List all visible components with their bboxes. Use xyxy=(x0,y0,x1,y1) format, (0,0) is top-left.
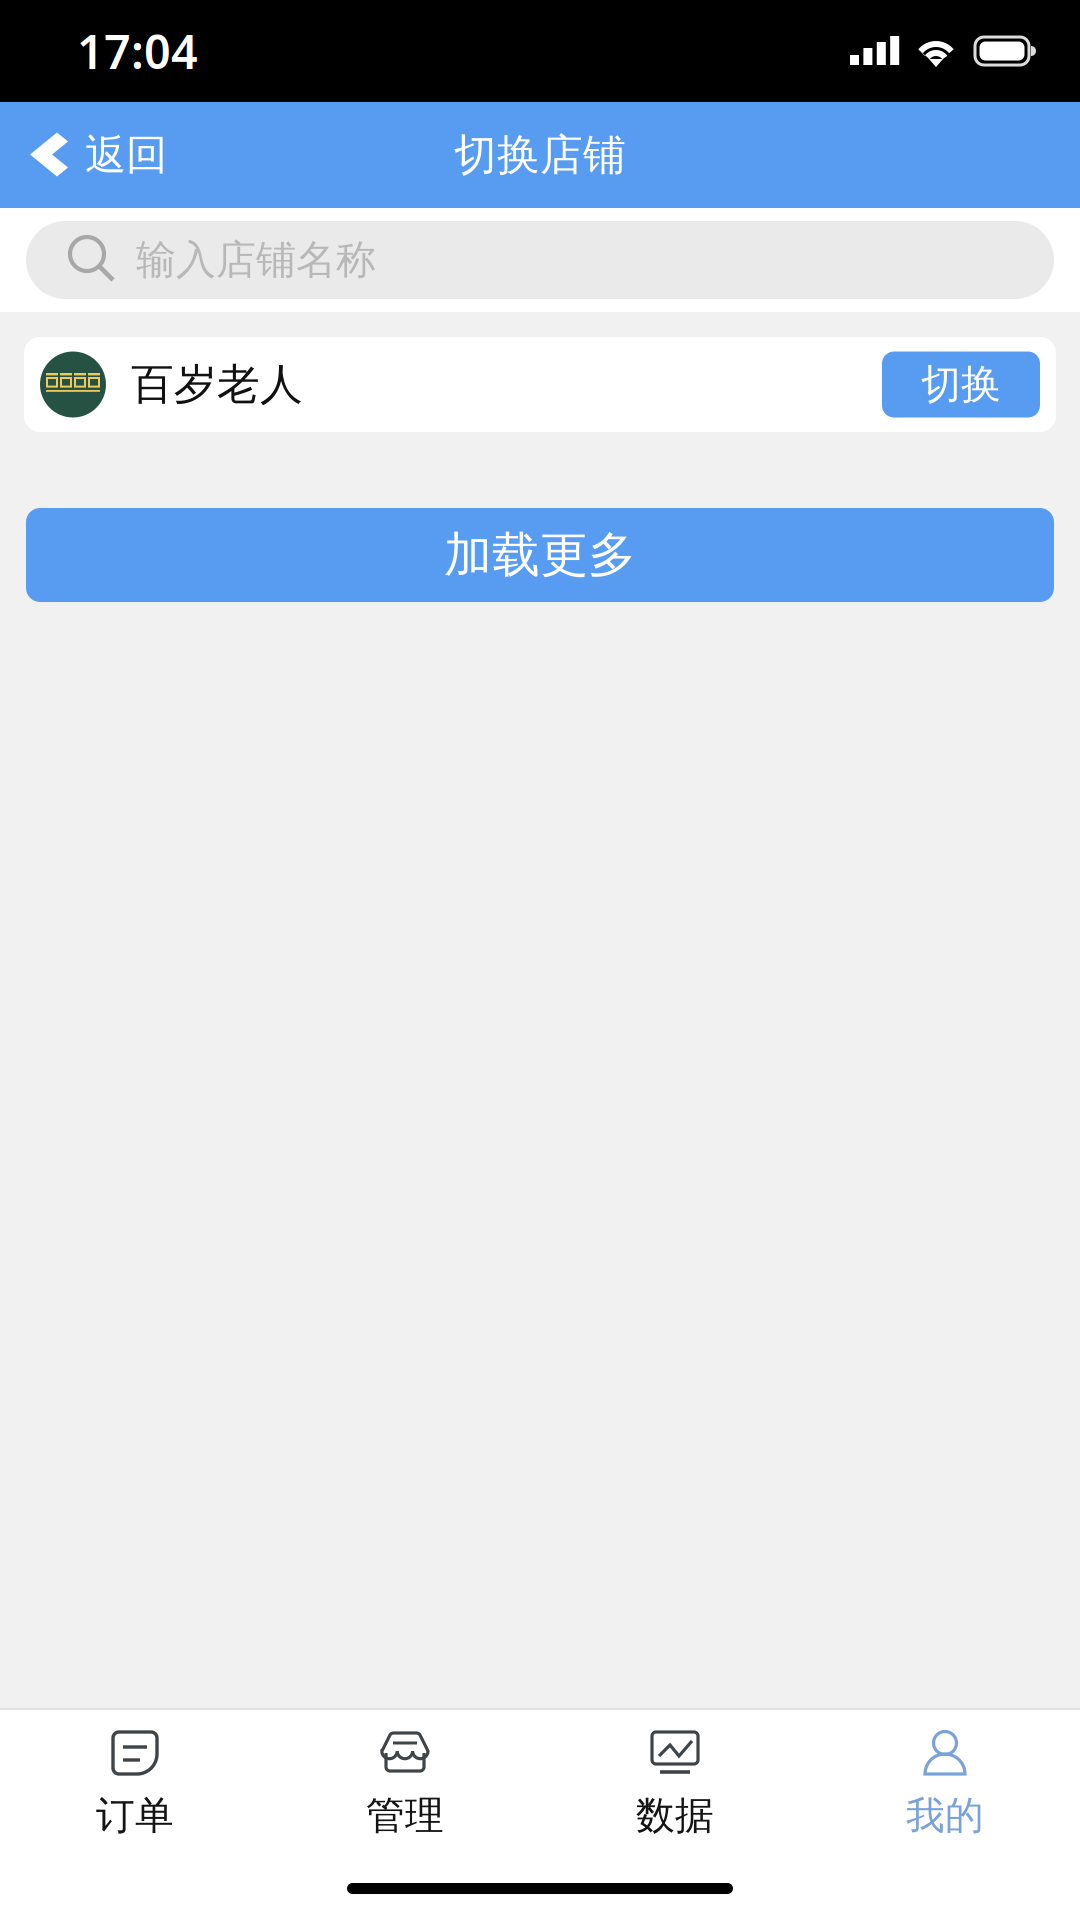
button[interactable]: 返回 xyxy=(0,102,193,208)
button[interactable]: 管理 xyxy=(270,1710,540,1851)
staticText: 我的 xyxy=(906,1792,984,1839)
button[interactable]: 订单 xyxy=(0,1710,270,1851)
staticText: 返回 xyxy=(85,130,167,180)
button[interactable]: 我的 xyxy=(810,1710,1080,1851)
button[interactable]: 数据 xyxy=(540,1710,810,1851)
button[interactable]: 输入店铺名称 xyxy=(26,221,1054,299)
staticText: 切换 xyxy=(921,360,1001,409)
staticText: 切换店铺 xyxy=(454,129,626,181)
staticText: 输入店铺名称 xyxy=(136,235,376,284)
staticText: 百岁老人 xyxy=(131,358,303,411)
staticText: 管理 xyxy=(366,1792,444,1839)
staticText: 订单 xyxy=(96,1792,174,1839)
staticText: 加载更多 xyxy=(444,525,636,584)
button[interactable]: 切换 xyxy=(882,351,1040,417)
staticText: 17:04 xyxy=(77,20,198,82)
staticText: 数据 xyxy=(636,1792,714,1839)
button[interactable]: 加载更多 xyxy=(26,508,1054,602)
